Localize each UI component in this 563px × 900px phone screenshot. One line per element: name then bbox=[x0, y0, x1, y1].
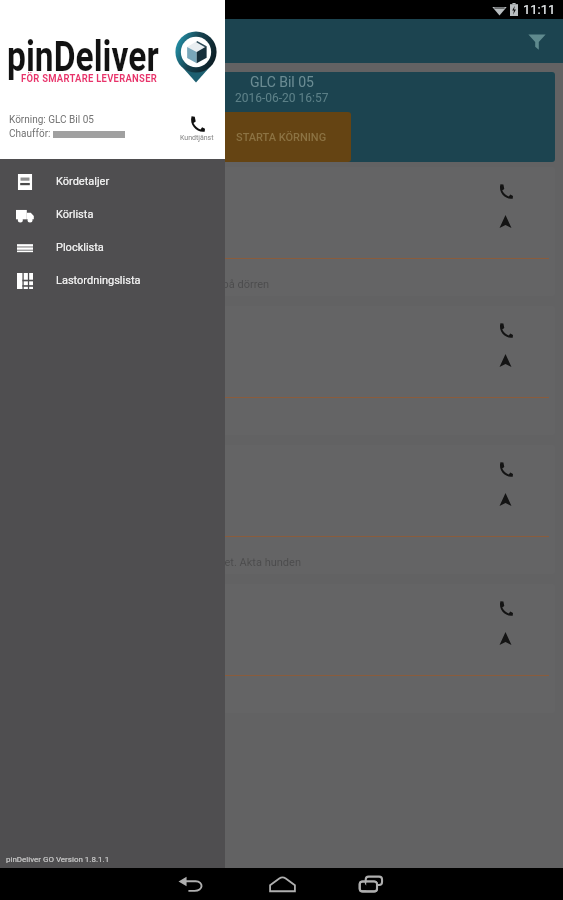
staticText: Kördetaljer bbox=[56, 175, 110, 188]
button[interactable]: Navigera bbox=[492, 347, 518, 373]
button[interactable]: STARTA KÖRNING bbox=[212, 112, 351, 162]
button[interactable]: Hem bbox=[254, 868, 310, 900]
button[interactable]: Leveransgatan 12 bbox=[8, 167, 555, 296]
staticText: Kundtjänst bbox=[180, 134, 214, 142]
button[interactable]: Kördetaljer bbox=[0, 165, 225, 198]
button[interactable]: Industrivägen 44 B bbox=[8, 306, 555, 435]
button[interactable]: Tillbaka bbox=[163, 868, 219, 900]
staticText: Chaufför: bbox=[9, 128, 53, 140]
button[interactable]: GLC Bil 05 bbox=[8, 72, 555, 162]
staticText: Körlista bbox=[56, 208, 94, 221]
button[interactable]: Navigera bbox=[492, 208, 518, 234]
staticText: Körning: GLC Bil 05 bbox=[9, 114, 94, 126]
staticText: GLC Bil 05 bbox=[250, 74, 314, 90]
button[interactable]: Ring bbox=[492, 456, 518, 482]
button[interactable]: Senaste appar bbox=[343, 868, 399, 900]
staticText: STARTA KÖRNING bbox=[236, 131, 327, 144]
button[interactable]: Filter bbox=[520, 24, 554, 58]
staticText: Ställs innanför grinden på baksidan av h… bbox=[18, 556, 301, 569]
staticText: FÖR SMARTARE LEVERANSER bbox=[21, 72, 158, 85]
button[interactable]: Körlista bbox=[0, 198, 225, 231]
staticText: 2016-06-20 16:57 bbox=[235, 91, 329, 105]
button[interactable]: Storgatan 3 bbox=[8, 584, 555, 713]
staticText: Lämna paketet utanför porten, ring sedan… bbox=[18, 278, 270, 291]
staticText: 11:11 bbox=[523, 2, 556, 17]
button[interactable]: Ring bbox=[492, 178, 518, 204]
staticText: Plocklista bbox=[56, 241, 104, 254]
button[interactable]: Navigera bbox=[492, 625, 518, 651]
staticText: Leveransgatan 12 bbox=[20, 176, 132, 192]
button[interactable]: Plocklista bbox=[0, 231, 225, 264]
button[interactable]: Kundtjänst bbox=[180, 116, 214, 142]
button[interactable]: Ring bbox=[492, 595, 518, 621]
staticText: Lastordningslista bbox=[56, 274, 141, 287]
button[interactable]: Navigera bbox=[492, 486, 518, 512]
staticText: pinDeliver bbox=[7, 32, 159, 81]
button[interactable]: Hantverkargatan 9 bbox=[8, 445, 555, 574]
button[interactable]: Lastordningslista bbox=[0, 264, 225, 297]
staticText: pinDeliver GO Version 1.8.1.1 bbox=[6, 855, 110, 864]
button[interactable]: Ring bbox=[492, 317, 518, 343]
